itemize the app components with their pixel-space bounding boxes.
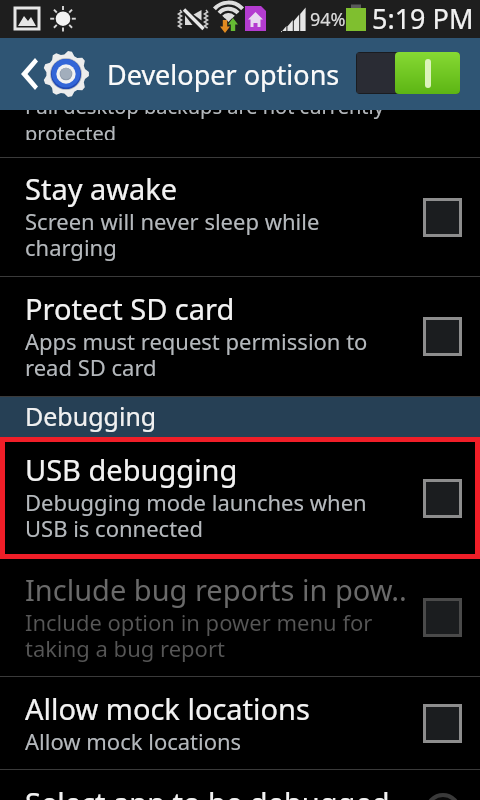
staticText: Protect SD card	[25, 289, 235, 328]
staticText: 94%	[310, 7, 346, 32]
button[interactable]: Stay awake	[0, 158, 480, 276]
staticText: USB debugging	[25, 450, 238, 489]
staticText: Debugging mode launches when USB is conn…	[25, 487, 367, 544]
button[interactable]: Protect SD card	[0, 277, 480, 396]
staticText: Allow mock locations	[25, 726, 242, 756]
button[interactable]: Developer options on	[356, 52, 460, 94]
staticText: Include option in power menu for taking …	[25, 607, 373, 664]
staticText: Select app to be debugged	[25, 783, 390, 800]
button[interactable]: Allow mock locations	[0, 677, 480, 769]
staticText: Full desktop backups are not currently p…	[25, 110, 384, 140]
staticText: Apps must request permission to read SD …	[25, 326, 368, 383]
staticText: Allow mock locations	[25, 689, 310, 728]
staticText: Debugging	[25, 399, 157, 433]
staticText: Screen will never sleep while charging	[25, 206, 320, 263]
staticText: Developer options	[107, 56, 340, 93]
button[interactable]: Include bug reports in pow..	[0, 559, 480, 676]
staticText: Include bug reports in pow..	[25, 570, 407, 609]
button[interactable]: USB debugging	[0, 437, 480, 559]
button[interactable]: Navigate up, Developer options	[0, 38, 480, 110]
staticText: 5:19 PM	[372, 0, 474, 37]
staticText: Stay awake	[25, 169, 178, 208]
